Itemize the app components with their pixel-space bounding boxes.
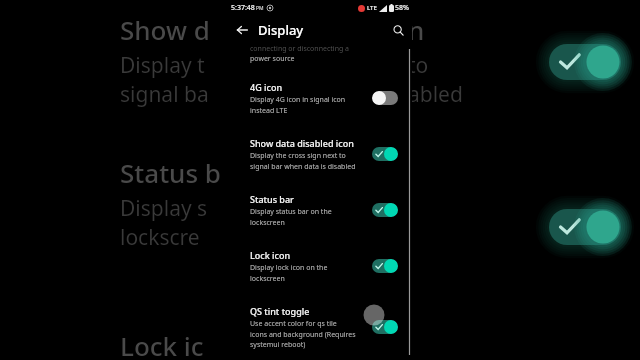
staticText: Display s bbox=[120, 194, 208, 223]
staticText: Status bar bbox=[250, 193, 294, 205]
staticText: 58% bbox=[395, 3, 409, 13]
button[interactable]: Status bar bbox=[228, 186, 412, 234]
button[interactable]: Lock icon bbox=[228, 242, 412, 290]
button[interactable]: Toggle on bbox=[372, 259, 398, 273]
staticText: power source bbox=[250, 54, 295, 64]
staticText: Show d bbox=[120, 12, 210, 47]
staticText: Show data disabled icon bbox=[250, 137, 354, 149]
staticText: 4G icon bbox=[250, 81, 283, 93]
button[interactable]: 4G icon bbox=[228, 74, 412, 122]
staticText: Display lock icon on the lockscreen bbox=[250, 263, 364, 283]
staticText: Use accent color for qs tile icons and b… bbox=[250, 319, 356, 349]
staticText: to bbox=[408, 51, 429, 80]
staticText: Status b bbox=[120, 155, 221, 190]
staticText: lockscre bbox=[120, 223, 200, 252]
staticText: n bbox=[408, 12, 425, 47]
staticText: 5:37:48 bbox=[231, 3, 255, 13]
button[interactable]: Toggle off bbox=[372, 91, 398, 105]
button[interactable]: Toggle on bbox=[372, 147, 398, 161]
staticText: LTE bbox=[367, 4, 377, 12]
staticText: Lock icon bbox=[250, 249, 291, 261]
staticText: Lock ic bbox=[120, 328, 204, 360]
button[interactable]: QS tint toggle bbox=[228, 298, 412, 356]
staticText: PM bbox=[256, 5, 264, 12]
staticText: Display 4G icon in signal icon instead L… bbox=[250, 95, 346, 115]
button[interactable]: Show data disabled icon bbox=[228, 130, 412, 178]
staticText: QS tint toggle bbox=[250, 305, 310, 317]
staticText: connecting or disconnecting a bbox=[250, 44, 350, 54]
staticText: Display t bbox=[120, 51, 205, 80]
staticText: Display the cross sign next to signal ba… bbox=[250, 151, 356, 171]
button[interactable]: connecting or disconnecting a bbox=[228, 44, 412, 64]
button[interactable]: Toggle on bbox=[372, 320, 398, 334]
staticText: signal ba bbox=[120, 80, 209, 109]
button[interactable]: Toggle on bbox=[372, 203, 398, 217]
staticText: Display bbox=[258, 21, 304, 39]
staticText: abled bbox=[408, 80, 463, 109]
button[interactable]: Search bbox=[384, 16, 412, 44]
staticText: Display status bar on the lockscreen bbox=[250, 207, 332, 227]
button[interactable]: Back bbox=[228, 16, 256, 44]
